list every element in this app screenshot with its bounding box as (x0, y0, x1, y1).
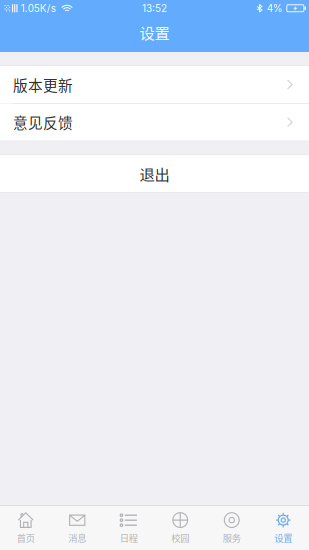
staticText: 服务 (223, 531, 241, 544)
staticText: 校园 (171, 531, 189, 544)
staticText: 设置 (274, 531, 292, 544)
button[interactable]: 消息 (51, 505, 103, 550)
staticText: 日程 (120, 531, 138, 544)
staticText: 意见反馈 (13, 112, 73, 133)
staticText: 退出 (139, 163, 169, 185)
staticText: 13:52 (142, 2, 167, 14)
staticText: 首页 (17, 531, 35, 544)
staticText: 版本更新 (13, 74, 73, 95)
button[interactable]: 服务 (206, 505, 257, 550)
staticText: 设置 (139, 21, 169, 43)
button[interactable]: 校园 (154, 505, 206, 550)
staticText: 1.05K/s (21, 2, 56, 14)
button[interactable]: 日程 (103, 505, 154, 550)
button[interactable]: 意见反馈 (0, 104, 309, 141)
staticText: 4% (267, 2, 283, 14)
button[interactable]: 设置 (257, 505, 309, 550)
button[interactable]: 版本更新 (0, 66, 309, 103)
staticText: 消息 (68, 531, 86, 544)
button[interactable]: 退出 (0, 155, 309, 192)
button[interactable]: 首页 (0, 505, 51, 550)
